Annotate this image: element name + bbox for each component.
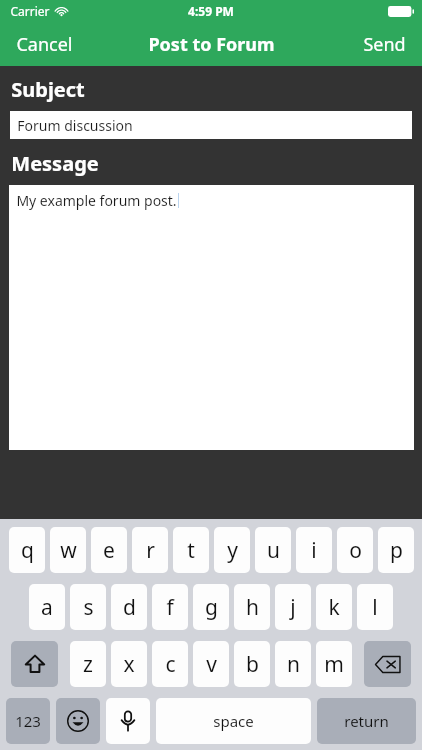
button[interactable]: n bbox=[275, 641, 311, 687]
button[interactable]: i bbox=[296, 527, 332, 573]
staticText: space bbox=[213, 711, 254, 731]
button[interactable]: j bbox=[275, 584, 311, 630]
button[interactable]: l bbox=[357, 584, 393, 630]
staticText: c bbox=[165, 650, 176, 679]
button[interactable]: b bbox=[234, 641, 270, 687]
staticText: Message bbox=[11, 150, 99, 177]
staticText: Subject bbox=[11, 76, 85, 103]
button[interactable]: My example forum post. bbox=[9, 185, 414, 450]
button[interactable]: space bbox=[156, 698, 311, 744]
staticText: My example forum post. bbox=[16, 191, 177, 210]
button[interactable]: z bbox=[70, 641, 106, 687]
staticText: b bbox=[246, 650, 259, 679]
button[interactable]: Dictation bbox=[106, 698, 150, 744]
button[interactable]: Send bbox=[347, 22, 422, 66]
staticText: y bbox=[227, 536, 238, 565]
staticText: k bbox=[328, 593, 340, 622]
staticText: Send bbox=[363, 32, 406, 56]
staticText: o bbox=[349, 536, 362, 565]
button[interactable]: e bbox=[91, 527, 127, 573]
staticText: s bbox=[83, 593, 94, 622]
button[interactable]: o bbox=[337, 527, 373, 573]
staticText: d bbox=[123, 593, 136, 622]
button[interactable]: Delete bbox=[364, 641, 411, 687]
button[interactable]: v bbox=[193, 641, 229, 687]
button[interactable]: r bbox=[132, 527, 168, 573]
button[interactable]: Emoji bbox=[56, 698, 100, 744]
staticText: p bbox=[390, 536, 403, 565]
staticText: t bbox=[187, 536, 195, 565]
staticText: g bbox=[205, 593, 218, 622]
staticText: 123 bbox=[15, 711, 41, 731]
button[interactable]: t bbox=[173, 527, 209, 573]
button[interactable]: 123 bbox=[6, 698, 50, 744]
button[interactable]: f bbox=[152, 584, 188, 630]
staticText: i bbox=[311, 536, 317, 565]
staticText: u bbox=[267, 536, 280, 565]
staticText: z bbox=[83, 650, 93, 679]
button[interactable]: k bbox=[316, 584, 352, 630]
staticText: r bbox=[146, 536, 155, 565]
button[interactable]: s bbox=[70, 584, 106, 630]
staticText: w bbox=[60, 536, 77, 565]
staticText: Carrier bbox=[10, 3, 50, 19]
button[interactable]: c bbox=[152, 641, 188, 687]
staticText: l bbox=[372, 593, 378, 622]
button[interactable]: x bbox=[111, 641, 147, 687]
staticText: 4:59 PM bbox=[188, 3, 234, 19]
staticText: Post to Forum bbox=[148, 32, 275, 57]
button[interactable]: g bbox=[193, 584, 229, 630]
staticText: q bbox=[21, 536, 34, 565]
button[interactable]: d bbox=[111, 584, 147, 630]
staticText: x bbox=[123, 650, 135, 679]
button[interactable]: p bbox=[378, 527, 414, 573]
staticText: j bbox=[290, 593, 296, 622]
staticText: f bbox=[166, 593, 174, 622]
staticText: v bbox=[206, 650, 217, 679]
staticText: a bbox=[41, 593, 53, 622]
button[interactable]: Shift bbox=[11, 641, 58, 687]
staticText: Cancel bbox=[16, 32, 73, 56]
staticText: Forum discussion bbox=[17, 116, 133, 135]
button[interactable]: Cancel bbox=[0, 22, 89, 66]
button[interactable]: Forum discussion bbox=[10, 111, 412, 139]
staticText: n bbox=[287, 650, 300, 679]
button[interactable]: q bbox=[9, 527, 45, 573]
staticText: return bbox=[344, 711, 389, 731]
staticText: m bbox=[324, 650, 344, 679]
button[interactable]: w bbox=[50, 527, 86, 573]
staticText: h bbox=[246, 593, 259, 622]
button[interactable]: m bbox=[316, 641, 352, 687]
button[interactable]: y bbox=[214, 527, 250, 573]
button[interactable]: return bbox=[317, 698, 416, 744]
button[interactable]: h bbox=[234, 584, 270, 630]
button[interactable]: a bbox=[29, 584, 65, 630]
button[interactable]: u bbox=[255, 527, 291, 573]
staticText: e bbox=[103, 536, 115, 565]
